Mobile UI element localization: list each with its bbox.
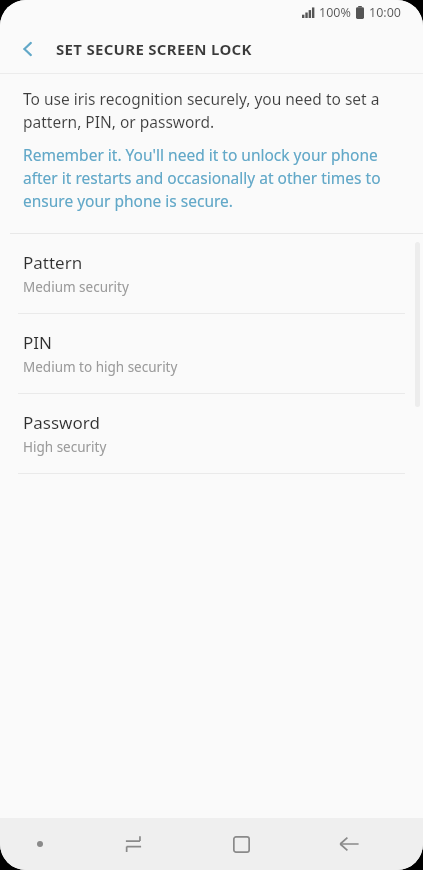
button[interactable]: Home bbox=[187, 818, 295, 870]
staticText: High security bbox=[23, 438, 107, 456]
staticText: Pattern bbox=[23, 251, 83, 274]
staticText: 100% bbox=[319, 4, 351, 21]
staticText: Medium security bbox=[23, 278, 129, 296]
staticText: Remember it. You'll need it to unlock yo… bbox=[23, 144, 403, 212]
staticText: SET SECURE SCREEN LOCK bbox=[56, 39, 252, 59]
button[interactable]: PIN bbox=[0, 314, 423, 393]
button[interactable]: Navigation hint bbox=[0, 818, 80, 870]
button[interactable]: Back bbox=[8, 29, 48, 69]
staticText: Password bbox=[23, 411, 100, 434]
button[interactable]: Pattern bbox=[0, 234, 423, 313]
staticText: 10:00 bbox=[369, 4, 401, 21]
staticText: Medium to high security bbox=[23, 358, 178, 376]
button[interactable]: Recents bbox=[80, 818, 187, 870]
button[interactable]: Password bbox=[0, 394, 423, 473]
button[interactable]: Back bbox=[295, 818, 403, 870]
staticText: PIN bbox=[23, 331, 52, 354]
staticText: To use iris recognition securely, you ne… bbox=[23, 88, 401, 133]
